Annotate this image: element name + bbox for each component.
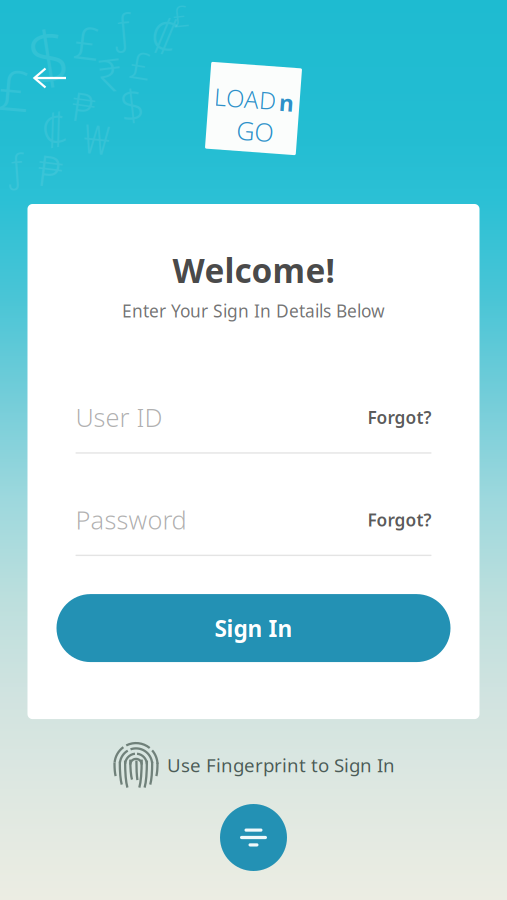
button[interactable]: Filter — [220, 804, 287, 871]
staticText: ₱ — [38, 142, 62, 199]
staticText: User ID — [75, 400, 162, 434]
staticText: Forgot? — [367, 406, 431, 429]
button[interactable]: Forgot? — [355, 503, 431, 536]
staticText: Forgot? — [367, 508, 431, 531]
staticText: £ — [172, 0, 189, 35]
staticText: ₹ — [97, 44, 123, 104]
staticText: £ — [0, 52, 30, 126]
staticText: Use Fingerprint to Sign In — [167, 753, 395, 777]
staticText: Sign In — [214, 613, 292, 643]
staticText: Welcome! — [172, 248, 334, 292]
staticText: ₡ — [42, 100, 66, 157]
button[interactable]: Sign In — [56, 594, 450, 662]
staticText: $ — [28, 8, 69, 104]
staticText: GO — [238, 114, 275, 148]
staticText: n — [278, 85, 293, 115]
staticText: ₩ — [84, 112, 109, 165]
staticText: LOAD — [213, 83, 275, 115]
staticText: ₡ — [152, 4, 177, 64]
button[interactable]: User ID — [75, 404, 355, 430]
button[interactable]: Use Fingerprint to Sign In — [112, 734, 395, 796]
staticText: ₱ — [72, 80, 95, 133]
staticText: Password — [75, 503, 186, 536]
button[interactable]: Forgot? — [355, 401, 431, 434]
staticText: ƒ — [8, 142, 23, 192]
button[interactable]: Password — [75, 507, 355, 533]
staticText: ƒ — [114, 1, 130, 54]
staticText: £ — [74, 12, 100, 72]
staticText: Enter Your Sign In Details Below — [122, 299, 385, 322]
staticText: $ — [120, 76, 144, 133]
button[interactable]: Back — [17, 51, 83, 105]
staticText: £ — [130, 40, 151, 90]
